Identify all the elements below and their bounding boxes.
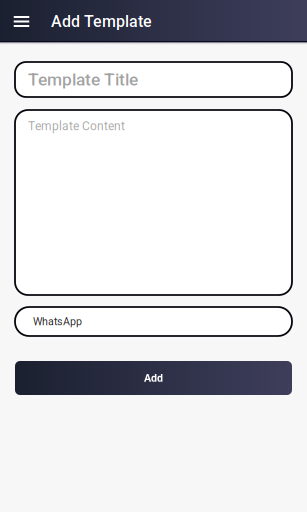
staticText: WhatsApp <box>33 315 82 328</box>
button[interactable]: Open navigation menu <box>0 0 43 41</box>
staticText: Template Title <box>28 69 138 90</box>
staticText: Add <box>144 372 163 384</box>
staticText: Template Content <box>28 119 125 133</box>
staticText: Add Template <box>51 12 152 31</box>
button[interactable]: Add <box>15 361 292 395</box>
